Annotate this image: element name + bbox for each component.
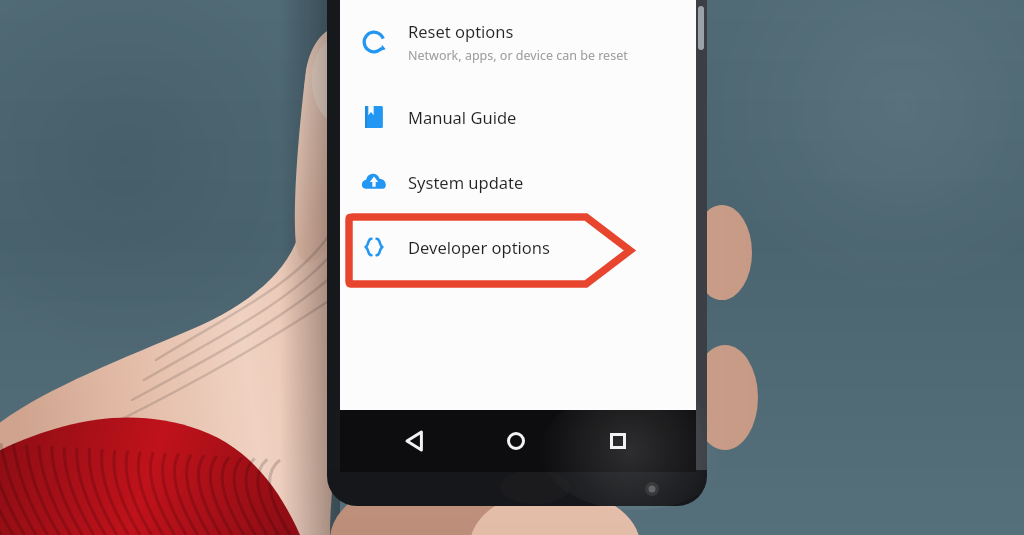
button[interactable]: Recent apps — [600, 423, 636, 459]
button[interactable]: Home — [498, 423, 534, 459]
staticText: Developer options — [408, 236, 550, 258]
button[interactable]: Developer options — [340, 214, 696, 280]
button[interactable]: Back — [398, 423, 434, 459]
staticText: Reset options — [408, 20, 514, 42]
button[interactable]: Manual Guide — [340, 84, 696, 150]
staticText: Network, apps, or device can be reset — [408, 47, 628, 64]
staticText: Manual Guide — [408, 106, 517, 128]
button[interactable]: System update — [340, 150, 696, 214]
staticText: System update — [408, 171, 524, 193]
other: Navigation bar — [340, 410, 696, 472]
button[interactable]: Reset options — [340, 0, 696, 84]
